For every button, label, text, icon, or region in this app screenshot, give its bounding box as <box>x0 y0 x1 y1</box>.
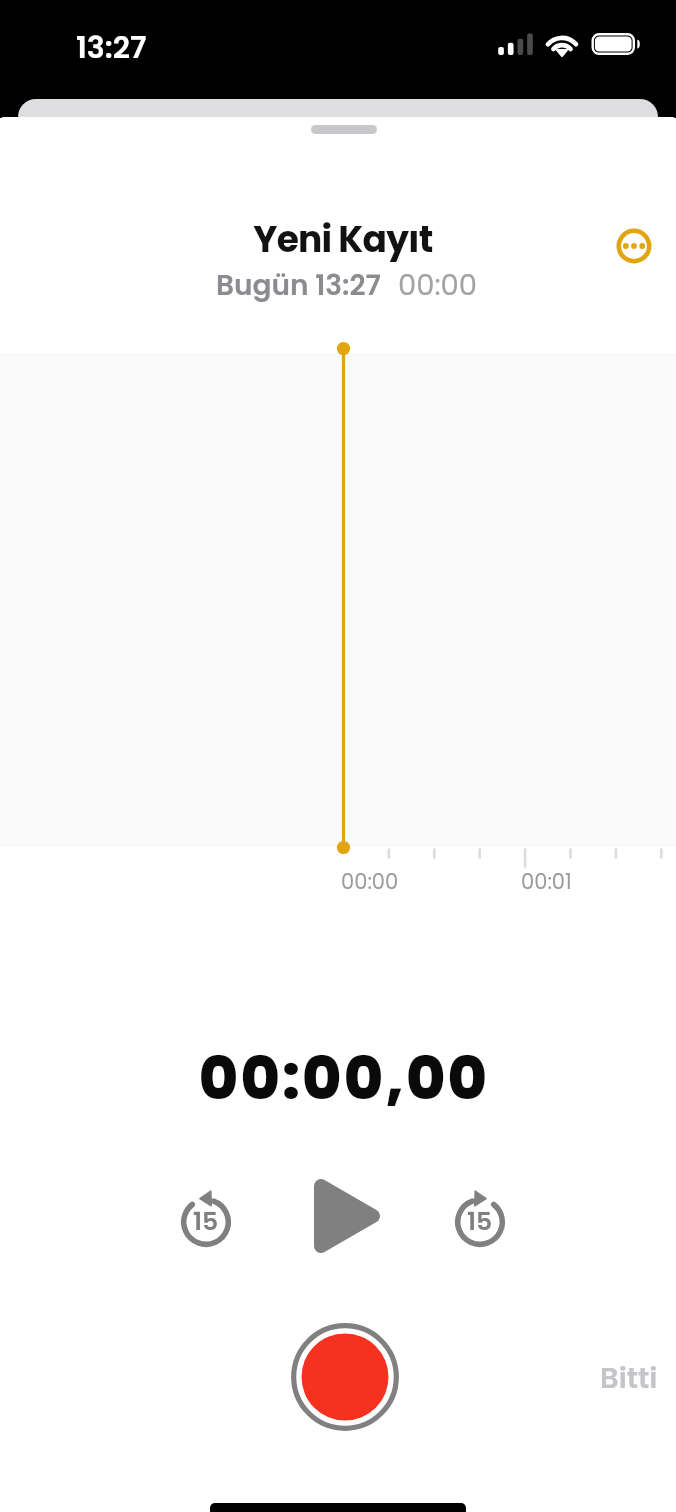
staticText: 00:00,00 <box>6 1036 676 1120</box>
button[interactable]: More options <box>610 222 658 270</box>
staticText: Bugün 13:27 <box>216 266 381 305</box>
staticText: 15 <box>193 1204 219 1239</box>
staticText: 15 <box>467 1204 493 1239</box>
staticText: 00:00 <box>341 867 399 896</box>
staticText: 00:00 <box>398 265 478 306</box>
staticText: Yeni Kayıt <box>5 214 676 264</box>
staticText: Bitti <box>600 1358 658 1399</box>
button[interactable]: Record <box>291 1323 399 1431</box>
staticText: 00:01 <box>521 867 572 896</box>
button[interactable]: Forward 15 seconds <box>448 1189 512 1253</box>
button[interactable]: Bitti <box>600 1358 658 1399</box>
button[interactable]: Play <box>309 1175 385 1257</box>
staticText: 13:27 <box>76 27 147 69</box>
button[interactable]: Rewind 15 seconds <box>174 1189 238 1253</box>
